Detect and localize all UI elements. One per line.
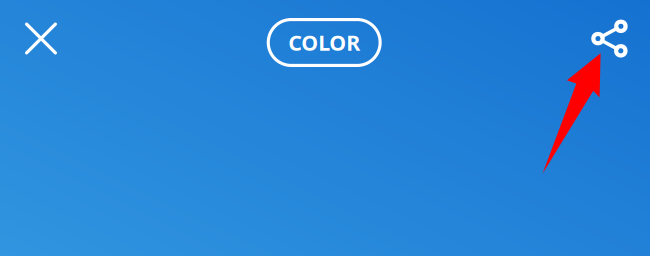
staticText: COLOR (288, 28, 360, 57)
button[interactable]: Close (0, 0, 650, 256)
button[interactable]: Share (0, 0, 650, 256)
button[interactable]: COLOR (267, 18, 382, 67)
